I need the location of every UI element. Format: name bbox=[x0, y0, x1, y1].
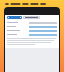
button[interactable]: Form field bbox=[4, 7, 60, 72]
button[interactable] bbox=[7, 16, 22, 19]
button[interactable]: Form field bbox=[7, 21, 57, 24]
button[interactable]: Form field bbox=[7, 29, 57, 32]
button[interactable]: Form field bbox=[7, 25, 57, 28]
button[interactable] bbox=[23, 16, 40, 19]
button[interactable]: Form field bbox=[7, 33, 57, 36]
